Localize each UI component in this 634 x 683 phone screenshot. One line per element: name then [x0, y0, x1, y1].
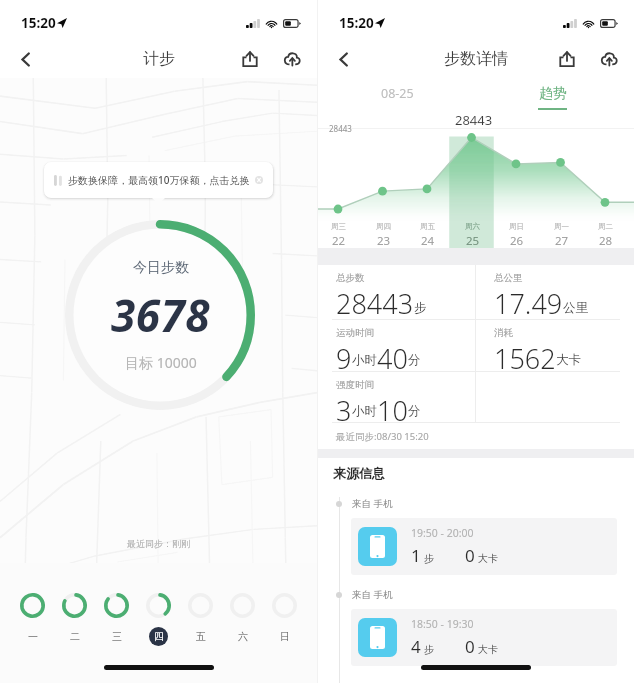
- staticText: 六: [238, 630, 248, 643]
- staticText: 周四: [376, 222, 391, 231]
- staticText: 26: [510, 233, 524, 249]
- staticText: 27: [555, 233, 569, 249]
- staticText: 步数换保障，最高领10万保额，点击兑换: [68, 173, 250, 187]
- staticText: 步: [424, 643, 434, 656]
- staticText: 目标 10000: [125, 353, 197, 372]
- staticText: 最近同步：刚刚: [127, 538, 190, 549]
- button[interactable]: 趋势: [476, 78, 634, 110]
- button[interactable]: 周三: [316, 222, 360, 249]
- button[interactable]: 一: [20, 593, 45, 646]
- staticText: 来自 手机: [352, 497, 393, 510]
- button[interactable]: Share: [552, 44, 582, 74]
- staticText: 15:20: [339, 14, 374, 32]
- button[interactable]: 二: [62, 593, 87, 646]
- button[interactable]: Share: [235, 44, 265, 74]
- staticText: 大卡: [478, 552, 498, 565]
- button[interactable]: 周日: [494, 222, 538, 249]
- staticText: 大卡: [478, 643, 498, 656]
- staticText: 1: [411, 544, 421, 567]
- button[interactable]: 18:50 - 19:30: [351, 609, 617, 666]
- staticText: 10: [377, 392, 408, 422]
- staticText: 总公里: [494, 272, 523, 284]
- staticText: 步: [424, 552, 434, 565]
- staticText: 17.49: [494, 285, 563, 319]
- staticText: 今日步数: [133, 259, 189, 277]
- staticText: 23: [377, 233, 391, 249]
- staticText: 大卡: [556, 352, 581, 368]
- staticText: 28443: [336, 285, 414, 319]
- staticText: 最近同步:08/30 15:20: [336, 430, 429, 443]
- staticText: 三: [112, 630, 122, 643]
- staticText: 周日: [509, 222, 524, 231]
- staticText: 运动时间: [336, 327, 374, 339]
- staticText: 0: [465, 544, 475, 567]
- staticText: 四: [154, 630, 164, 643]
- staticText: 周三: [331, 222, 346, 231]
- button[interactable]: 周六: [450, 222, 494, 249]
- staticText: 28: [599, 233, 613, 249]
- staticText: 五: [196, 630, 206, 643]
- button[interactable]: 19:50 - 20:00: [351, 518, 617, 575]
- staticText: 周二: [598, 222, 613, 231]
- staticText: 强度时间: [336, 379, 374, 391]
- button[interactable]: 周一: [539, 222, 583, 249]
- staticText: 小时: [352, 403, 377, 419]
- button[interactable]: 四: [146, 593, 171, 646]
- button[interactable]: 五: [188, 593, 213, 646]
- staticText: 08-25: [381, 85, 414, 102]
- button[interactable]: 周二: [583, 222, 627, 249]
- staticText: 15:20: [21, 14, 56, 32]
- button[interactable]: 日: [272, 593, 297, 646]
- staticText: 日: [280, 630, 290, 643]
- staticText: 19:50 - 20:00: [411, 526, 474, 540]
- staticText: 来源信息: [333, 465, 385, 481]
- staticText: 0: [465, 635, 475, 658]
- staticText: 3: [336, 392, 352, 422]
- staticText: 步: [414, 300, 427, 316]
- button[interactable]: 周五: [405, 222, 449, 249]
- staticText: 趋势: [539, 85, 567, 103]
- button[interactable]: 步数换保障，最高领10万保额，点击兑换: [44, 162, 273, 198]
- staticText: 周六: [465, 222, 480, 231]
- staticText: 小时: [352, 352, 377, 368]
- staticText: 一: [28, 630, 38, 643]
- staticText: 1562: [494, 340, 556, 371]
- button[interactable]: 周四: [361, 222, 405, 249]
- staticText: 二: [70, 630, 80, 643]
- staticText: 消耗: [494, 327, 513, 339]
- staticText: 24: [421, 233, 435, 249]
- staticText: 来自 手机: [352, 588, 393, 601]
- staticText: 9: [336, 340, 352, 371]
- staticText: 周一: [554, 222, 569, 231]
- staticText: 步数详情: [444, 49, 508, 69]
- button[interactable]: Back: [8, 42, 42, 76]
- staticText: 总步数: [336, 272, 365, 284]
- staticText: 40: [377, 340, 408, 371]
- staticText: 28443: [455, 111, 493, 129]
- staticText: 18:50 - 19:30: [411, 617, 474, 631]
- button[interactable]: 三: [104, 593, 129, 646]
- staticText: 周五: [420, 222, 435, 231]
- button[interactable]: Back: [326, 42, 360, 76]
- staticText: 计步: [143, 49, 175, 69]
- staticText: 分: [408, 352, 421, 368]
- staticText: 28443: [329, 123, 352, 134]
- staticText: 22: [332, 233, 346, 249]
- staticText: 公里: [563, 300, 588, 316]
- button[interactable]: Upload to cloud: [277, 44, 307, 74]
- button[interactable]: Upload to cloud: [594, 44, 624, 74]
- staticText: 分: [408, 403, 421, 419]
- staticText: 3678: [111, 285, 210, 345]
- button[interactable]: 六: [230, 593, 255, 646]
- button[interactable]: 08-25: [318, 78, 476, 110]
- staticText: 25: [466, 233, 480, 249]
- staticText: 4: [411, 635, 421, 658]
